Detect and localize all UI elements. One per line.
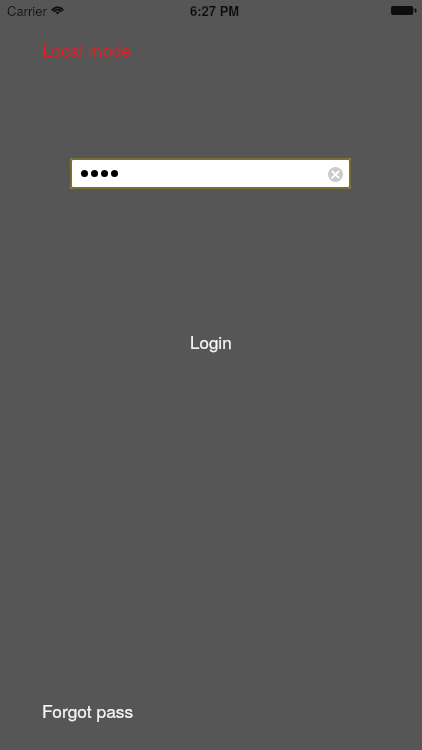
staticText: 6:27 PM (190, 1, 240, 20)
other: Battery full (391, 6, 416, 15)
button[interactable]: Login (0, 328, 422, 354)
staticText: Forgot pass (42, 698, 134, 723)
staticText: Login (190, 329, 232, 353)
staticText: Local mode (42, 37, 131, 62)
button[interactable]: Clear text (325, 164, 345, 184)
staticText: Carrier (7, 1, 47, 20)
other: Wi-Fi (49, 3, 66, 15)
button[interactable]: Forgot pass (42, 698, 134, 723)
button[interactable]: Password (70, 158, 351, 189)
